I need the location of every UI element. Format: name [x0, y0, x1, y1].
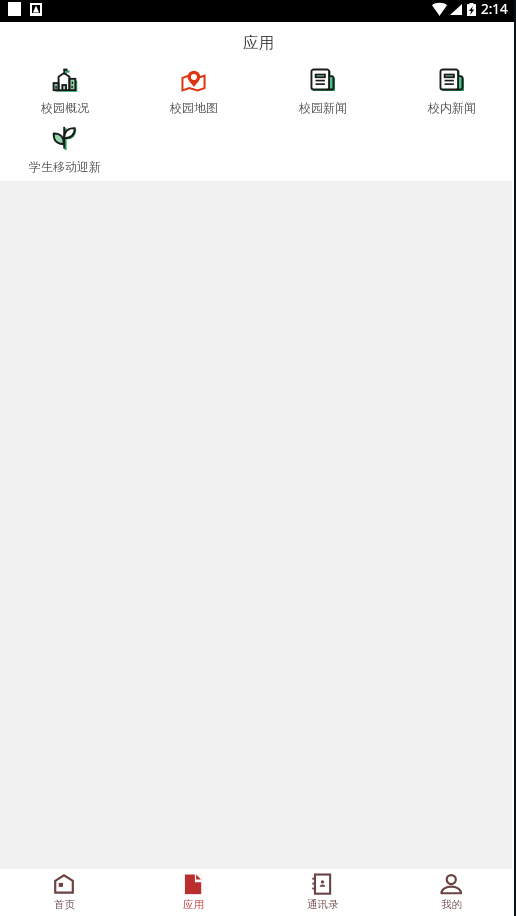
staticText: 校园概况 [41, 100, 89, 115]
staticText: 校园新闻 [299, 100, 347, 115]
button[interactable]: 校园新闻 [258, 60, 387, 119]
staticText: 应用 [183, 898, 204, 911]
button[interactable]: 首页 [0, 869, 129, 911]
staticText: 通讯录 [307, 898, 339, 911]
staticText: 学生移动迎新 [29, 159, 101, 174]
button[interactable]: 校园地图 [129, 60, 258, 119]
staticText: 首页 [54, 898, 75, 911]
staticText: 我的 [441, 898, 462, 911]
staticText: 2:14 [481, 0, 508, 18]
staticText: 校园地图 [170, 100, 218, 115]
button[interactable]: 我的 [387, 869, 516, 911]
staticText: 校内新闻 [428, 100, 476, 115]
button[interactable]: 通讯录 [258, 869, 387, 911]
button[interactable]: 学生移动迎新 [0, 119, 129, 178]
button[interactable]: 校园概况 [0, 60, 129, 119]
staticText: 应用 [243, 33, 274, 53]
button[interactable]: 应用 [129, 869, 258, 911]
button[interactable]: 校内新闻 [387, 60, 516, 119]
